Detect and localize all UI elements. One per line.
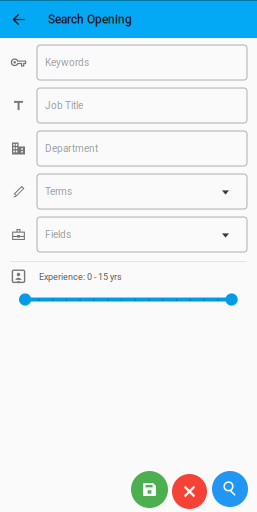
staticText: Keywords bbox=[45, 57, 89, 68]
staticText: Terms bbox=[45, 186, 72, 197]
button[interactable]: Cancel bbox=[172, 471, 207, 512]
button[interactable]: Search bbox=[212, 471, 248, 512]
staticText: Department bbox=[45, 143, 98, 154]
staticText: Search Opening bbox=[48, 12, 132, 27]
button[interactable]: Back bbox=[0, 0, 37, 38]
staticText: Fields bbox=[45, 229, 71, 240]
button[interactable]: Save bbox=[131, 471, 168, 512]
staticText: Job Title bbox=[45, 100, 83, 111]
staticText: Experience: 0 - 15 yrs bbox=[39, 272, 122, 282]
